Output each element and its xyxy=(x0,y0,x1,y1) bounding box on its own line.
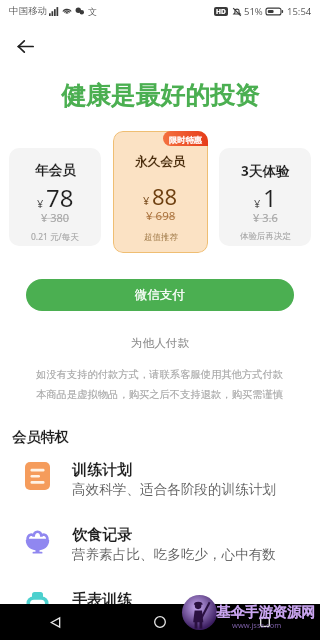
staticText: 永久会员 xyxy=(135,154,186,170)
staticText: 超值推荐 xyxy=(144,232,178,243)
button[interactable]: Home xyxy=(147,609,173,635)
staticText: 3天体验 xyxy=(241,162,290,180)
staticText: 如没有支持的付款方式，请联系客服使用其他方式付款 xyxy=(36,368,284,381)
staticText: 1 xyxy=(263,181,277,214)
staticText: ¥ 3.6 xyxy=(253,210,278,225)
button[interactable]: 为他人付款 xyxy=(0,336,320,351)
staticText: 88 xyxy=(152,181,178,211)
button[interactable]: 饮食记录 xyxy=(0,523,320,565)
button[interactable]: Back xyxy=(10,31,40,61)
staticText: 本商品是虚拟物品，购买之后不支持退款，购买需谨慎 xyxy=(36,388,284,401)
staticText: 训练计划 xyxy=(72,461,132,480)
staticText: HD xyxy=(216,7,226,16)
button[interactable]: 3天体验 xyxy=(219,148,311,246)
staticText: ¥ xyxy=(254,196,261,211)
staticText: 健康是最好的投资 xyxy=(61,80,260,111)
staticText: 手表训练 xyxy=(72,591,132,610)
button[interactable]: 永久会员 xyxy=(113,131,208,253)
staticText: 0.21 元/每天 xyxy=(31,231,79,243)
staticText: ¥ 380 xyxy=(41,210,70,225)
staticText: 文 xyxy=(88,6,97,17)
staticText: 年会员 xyxy=(35,162,76,179)
staticText: 78 xyxy=(46,181,74,214)
staticText: 为他人付款 xyxy=(131,336,189,351)
staticText: ¥ xyxy=(143,193,150,208)
staticText: 15:54 xyxy=(287,5,312,18)
button[interactable]: 训练计划 xyxy=(0,458,320,500)
button[interactable]: 微信支付 xyxy=(26,279,294,311)
staticText: 营养素占比、吃多吃少，心中有数 xyxy=(72,546,276,563)
staticText: www.jsss.com xyxy=(232,620,282,630)
button[interactable]: 年会员 xyxy=(9,148,101,246)
staticText: 手表更方便，让运动更专业 xyxy=(72,611,236,628)
staticText: 会员特权 xyxy=(12,428,69,446)
staticText: 限时特惠 xyxy=(169,135,202,145)
button[interactable]: Back xyxy=(42,609,68,635)
staticText: 高效科学、适合各阶段的训练计划 xyxy=(72,481,276,498)
staticText: ¥ xyxy=(37,196,44,211)
staticText: 基伞手游资源网 xyxy=(216,603,316,621)
staticText: 饮食记录 xyxy=(72,526,132,545)
staticText: 中国移动 xyxy=(9,5,47,17)
staticText: 51% xyxy=(244,5,263,18)
staticText: 微信支付 xyxy=(135,287,185,303)
staticText: ¥ 698 xyxy=(146,208,176,224)
button[interactable]: Recents xyxy=(252,609,278,635)
button[interactable]: 手表训练 xyxy=(0,588,320,630)
staticText: 体验后再决定 xyxy=(240,231,291,242)
